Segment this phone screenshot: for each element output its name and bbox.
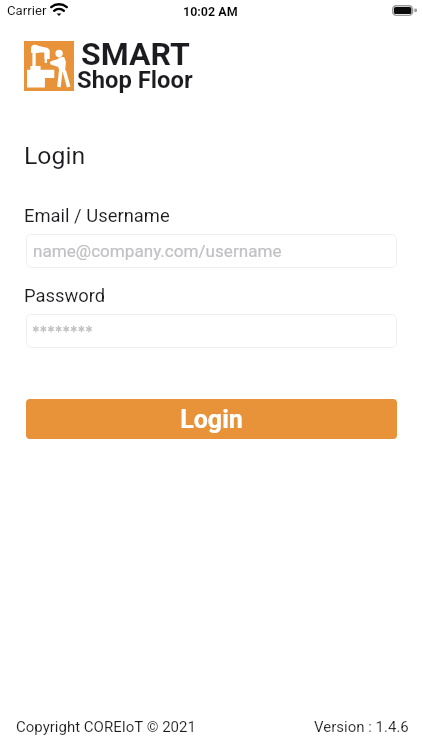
button[interactable]: Login xyxy=(26,399,397,439)
staticText: Password xyxy=(24,285,106,307)
button[interactable]: Password input xyxy=(26,314,397,348)
staticText: Login xyxy=(180,405,243,434)
staticText: 10:02 AM xyxy=(183,4,238,19)
staticText: name@company.com/username xyxy=(33,241,282,261)
button[interactable]: Email / Username input xyxy=(26,234,397,268)
staticText: SMART xyxy=(81,35,190,73)
staticText: Copyright COREIoT © 2021 xyxy=(16,718,196,736)
staticText: Carrier xyxy=(7,3,47,18)
staticText: Email / Username xyxy=(24,205,170,227)
other: Battery xyxy=(392,5,417,16)
staticText: Shop Floor xyxy=(77,66,193,94)
other: Wi-Fi xyxy=(51,4,67,16)
staticText: Login xyxy=(24,141,86,170)
staticText: Version : 1.4.6 xyxy=(314,718,409,736)
